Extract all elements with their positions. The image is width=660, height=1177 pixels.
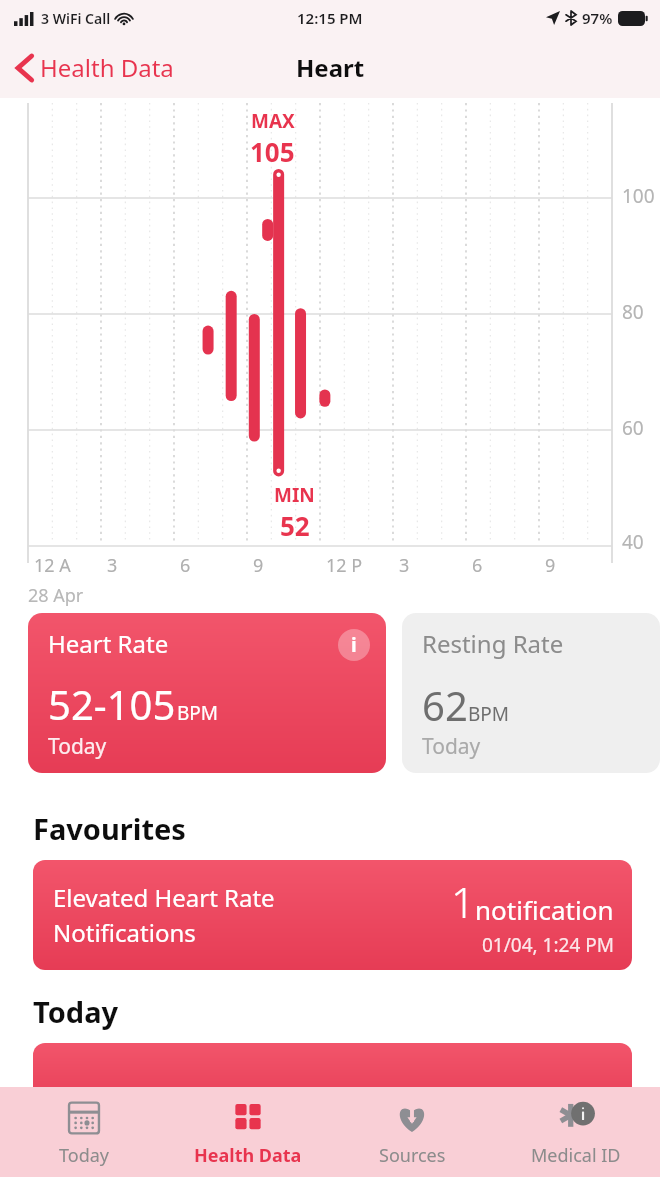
- staticText: 12:15 PM: [297, 8, 363, 28]
- staticText: 12 P: [326, 553, 363, 578]
- staticText: BPM: [468, 701, 510, 727]
- staticText: MAX: [251, 108, 295, 134]
- staticText: 80: [622, 299, 644, 325]
- staticText: notification: [475, 892, 614, 927]
- staticText: 97%: [582, 8, 613, 28]
- button[interactable]: Health Data: [0, 45, 188, 90]
- staticText: 62: [422, 678, 468, 732]
- staticText: BPM: [177, 700, 219, 726]
- staticText: Heart: [296, 51, 365, 84]
- button[interactable]: Elevated Heart Rate: [33, 860, 632, 970]
- staticText: Today: [48, 732, 107, 761]
- staticText: 9: [545, 553, 556, 578]
- button[interactable]: Info: [338, 629, 370, 661]
- staticText: 01/04, 1:24 PM: [482, 932, 614, 958]
- staticText: Elevated Heart Rate: [53, 881, 275, 914]
- staticText: 3: [399, 553, 410, 578]
- button[interactable]: Today: [4, 1088, 164, 1176]
- staticText: Health Data: [40, 51, 174, 84]
- staticText: Today: [59, 1143, 109, 1168]
- staticText: 12 A: [34, 553, 71, 578]
- staticText: Health Data: [194, 1143, 302, 1168]
- staticText: 9: [253, 553, 264, 578]
- staticText: 6: [472, 553, 483, 578]
- staticText: 3: [107, 553, 118, 578]
- staticText: 52-105: [48, 677, 176, 731]
- staticText: Notifications: [53, 916, 196, 949]
- staticText: Today: [33, 992, 119, 1031]
- staticText: 105: [250, 134, 295, 169]
- button[interactable]: Heart Rate: [28, 613, 386, 773]
- staticText: Sources: [379, 1143, 446, 1168]
- button[interactable]: Sources: [332, 1088, 492, 1176]
- staticText: i: [351, 632, 357, 658]
- staticText: 52: [280, 508, 310, 543]
- staticText: 1: [451, 873, 475, 930]
- staticText: Heart Rate: [48, 627, 169, 660]
- staticText: MIN: [274, 482, 315, 508]
- staticText: 3 WiFi Call: [41, 9, 111, 28]
- staticText: 6: [180, 553, 191, 578]
- button[interactable]: [33, 1043, 632, 1113]
- staticText: Today: [422, 732, 481, 761]
- staticText: Favourites: [33, 809, 186, 848]
- staticText: 100: [622, 183, 655, 209]
- button[interactable]: Resting Rate: [402, 613, 660, 773]
- staticText: 28 Apr: [28, 583, 84, 608]
- button[interactable]: Medical ID: [496, 1088, 656, 1176]
- button[interactable]: Health Data: [168, 1088, 328, 1176]
- staticText: Resting Rate: [422, 627, 564, 660]
- staticText: 40: [622, 529, 644, 555]
- staticText: Medical ID: [531, 1143, 621, 1168]
- staticText: 60: [622, 415, 644, 441]
